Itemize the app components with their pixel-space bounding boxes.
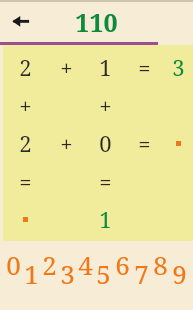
staticText: + [99, 90, 112, 120]
button[interactable]: 7 [132, 247, 151, 287]
button[interactable]: 0 [4, 247, 22, 287]
staticText: + [60, 128, 73, 158]
button[interactable]: 9 [170, 247, 189, 287]
staticText: = [19, 166, 32, 196]
staticText: + [19, 90, 32, 120]
staticText: 2 [42, 247, 57, 282]
staticText: 6 [115, 247, 130, 282]
staticText: 1 [99, 52, 112, 82]
button[interactable]: 6 [113, 247, 132, 287]
staticText: 2 [19, 52, 32, 82]
staticText: 8 [153, 247, 168, 282]
button[interactable]: 1 [22, 247, 40, 287]
staticText: 0 [6, 247, 21, 282]
staticText: 3 [60, 256, 75, 291]
staticText: 2 [19, 128, 32, 158]
staticText: + [60, 52, 73, 82]
staticText: = [138, 128, 151, 158]
button[interactable]: 5 [94, 247, 113, 287]
staticText: = [99, 166, 112, 196]
button[interactable]: 8 [151, 247, 170, 287]
button[interactable]: 2 [40, 247, 58, 287]
staticText: 110 [75, 5, 118, 39]
staticText: 9 [172, 256, 187, 291]
button[interactable]: 110 [75, 5, 118, 39]
button[interactable]: Back [8, 8, 34, 34]
staticText: 3 [172, 52, 185, 82]
staticText: 0 [99, 128, 112, 158]
button[interactable]: 3 [58, 247, 76, 287]
staticText: 7 [134, 256, 149, 291]
staticText: 5 [96, 256, 111, 291]
staticText: 4 [78, 247, 93, 282]
staticText: 1 [24, 256, 39, 291]
staticText: 1 [99, 204, 112, 234]
staticText: = [138, 52, 151, 82]
button[interactable]: 4 [76, 247, 94, 287]
